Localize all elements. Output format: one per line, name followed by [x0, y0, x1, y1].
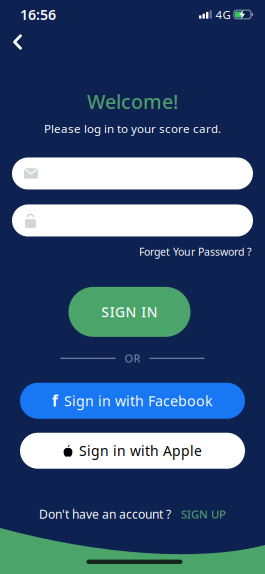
- staticText: 4G: [215, 7, 230, 22]
- staticText: Sign in with Facebook: [64, 391, 213, 410]
- button[interactable]: SIGN UP: [181, 506, 226, 522]
- button[interactable]: Sign in with Apple: [20, 433, 245, 469]
- staticText: SIGN UP: [181, 506, 226, 522]
- button[interactable]: f: [20, 383, 245, 419]
- button[interactable]: SIGN IN: [68, 287, 190, 337]
- staticText: f: [52, 390, 58, 411]
- staticText: 16:56: [20, 5, 56, 24]
- button[interactable]: Back: [0, 29, 22, 55]
- staticText: OR: [124, 351, 140, 366]
- staticText: Don't have an account ?: [39, 506, 171, 522]
- staticText: Welcome!: [87, 88, 178, 115]
- button[interactable]: Forget Your Password ?: [139, 244, 252, 259]
- staticText: Sign in with Apple: [79, 441, 202, 460]
- staticText: Forget Your Password ?: [139, 244, 252, 259]
- button[interactable]: Email: [12, 157, 253, 189]
- button[interactable]: Password: [12, 204, 253, 236]
- staticText: SIGN IN: [101, 302, 158, 321]
- staticText: Please log in to your score card.: [44, 121, 221, 136]
